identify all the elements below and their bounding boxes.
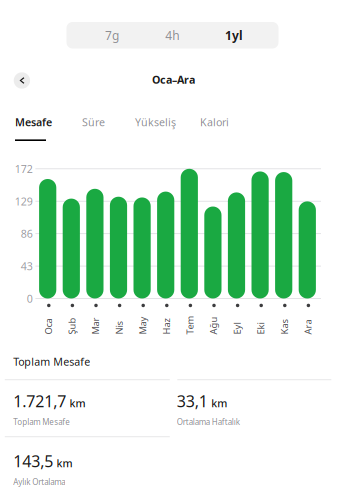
staticText: km (211, 396, 227, 410)
staticText: May (133, 318, 151, 331)
button[interactable]: Yükseliş (135, 116, 181, 141)
staticText: 143,5 (13, 450, 53, 472)
staticText: Şub (62, 318, 79, 331)
staticText: Toplam Mesafe (13, 416, 70, 427)
staticText: Ortalama Haftalık (177, 416, 240, 427)
staticText: km (57, 456, 73, 470)
staticText: Mar (85, 318, 102, 331)
staticText: Tem (180, 318, 199, 331)
staticText: Oca–Ara (152, 72, 195, 87)
staticText: 1yl (225, 27, 243, 43)
staticText: Oca (38, 318, 54, 331)
staticText: Eyl (227, 318, 239, 331)
staticText: 33,1 (177, 390, 208, 412)
staticText: Ağu (203, 318, 221, 331)
staticText: km (70, 396, 86, 410)
staticText: 1.721,7 (13, 390, 66, 412)
button[interactable]: Süre (82, 116, 110, 141)
staticText: Yükseliş (135, 115, 176, 129)
staticText: Kalori (200, 115, 229, 129)
staticText: Kas (274, 318, 289, 331)
button[interactable]: Back (14, 72, 30, 89)
staticText: Ara (298, 318, 313, 331)
button[interactable]: Mesafe (15, 116, 57, 141)
button[interactable]: 4h (141, 22, 203, 48)
button[interactable]: Kalori (200, 116, 236, 141)
staticText: 4h (165, 27, 179, 43)
staticText: Mesafe (15, 115, 52, 129)
staticText: 86 (21, 227, 33, 241)
staticText: Toplam Mesafe (13, 355, 90, 369)
staticText: 129 (15, 194, 33, 208)
staticText: 43 (21, 259, 33, 273)
staticText: 172 (15, 162, 33, 176)
staticText: 0 (27, 291, 33, 306)
staticText: 7g (105, 27, 119, 43)
staticText: Süre (82, 115, 105, 129)
staticText: Aylık Ortalama (13, 476, 65, 487)
staticText: Haz (156, 318, 172, 331)
staticText: Eki (251, 318, 263, 331)
button[interactable]: 7g (81, 22, 143, 48)
button[interactable]: 1yl (203, 22, 265, 48)
staticText: Nis (109, 318, 122, 331)
